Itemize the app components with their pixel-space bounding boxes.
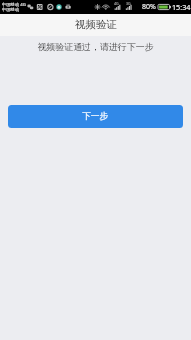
staticText: 3G	[126, 1, 131, 6]
staticText: 中国移动 4G	[2, 1, 26, 7]
button[interactable]: 下一步	[8, 105, 183, 128]
staticText: 15:34	[172, 2, 191, 12]
staticText: 中国移动	[2, 7, 20, 12]
staticText: 视频验证通过，请进行下一步	[0, 41, 191, 52]
staticText: 80%	[142, 2, 156, 12]
staticText: 下一步	[82, 111, 109, 122]
staticText: 4G	[114, 1, 119, 6]
staticText: 视频验证	[75, 18, 117, 31]
other: System status bar	[0, 0, 191, 14]
